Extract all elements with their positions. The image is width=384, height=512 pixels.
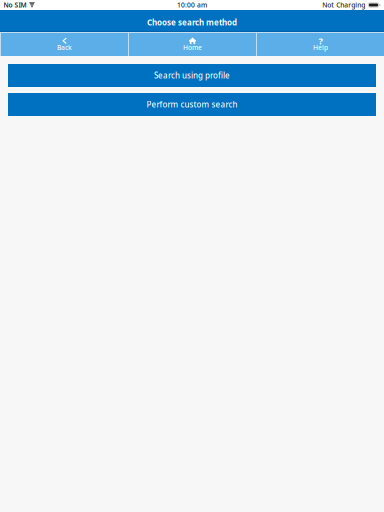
staticText: Choose search method xyxy=(147,17,237,28)
button[interactable]: ? xyxy=(257,33,384,56)
staticText: Back xyxy=(57,43,72,52)
staticText: 10:00 am xyxy=(177,1,207,9)
staticText: No SIM xyxy=(3,1,26,9)
button[interactable]: Home xyxy=(129,33,256,56)
staticText: Not Charging xyxy=(322,1,365,9)
button[interactable]: Perform custom search xyxy=(8,93,376,116)
staticText: Search using profile xyxy=(154,70,230,81)
button[interactable]: Search using profile xyxy=(8,64,376,87)
staticText: ? xyxy=(318,35,322,47)
staticText: Home xyxy=(183,43,202,52)
staticText: Perform custom search xyxy=(146,99,237,110)
button[interactable]: Back xyxy=(1,33,128,56)
staticText: Help xyxy=(313,43,328,52)
